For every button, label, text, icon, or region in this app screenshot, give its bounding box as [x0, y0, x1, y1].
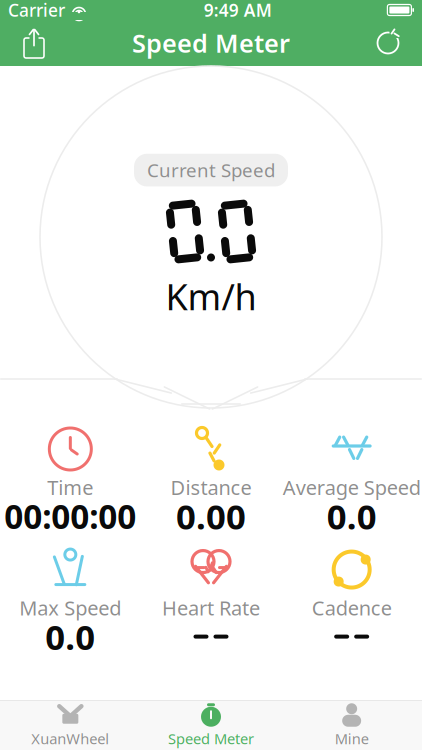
- button[interactable]: XuanWheel: [0, 701, 141, 750]
- staticText: Cadence: [312, 595, 392, 621]
- staticText: Km/h: [165, 272, 256, 320]
- button[interactable]: Mine: [281, 701, 422, 750]
- staticText: Distance: [170, 474, 251, 501]
- button[interactable]: Refresh: [362, 21, 414, 65]
- staticText: 0.0: [45, 614, 95, 660]
- staticText: Speed Meter: [132, 26, 290, 60]
- staticText: 0.0: [327, 493, 377, 539]
- staticText: 0.00: [176, 493, 246, 539]
- staticText: XuanWheel: [31, 729, 109, 748]
- staticText: 9:49 AM: [204, 0, 272, 21]
- staticText: Heart Rate: [162, 595, 260, 621]
- staticText: Time: [47, 474, 93, 501]
- staticText: Speed Meter: [168, 729, 254, 748]
- staticText: Average Speed: [283, 474, 421, 501]
- staticText: Current Speed: [147, 158, 275, 182]
- button[interactable]: Share: [8, 21, 60, 65]
- staticText: Carrier: [8, 0, 65, 21]
- staticText: Mine: [335, 729, 369, 748]
- staticText: Max Speed: [19, 595, 121, 621]
- button[interactable]: Speed Meter: [141, 701, 281, 750]
- staticText: 00:00:00: [4, 494, 136, 538]
